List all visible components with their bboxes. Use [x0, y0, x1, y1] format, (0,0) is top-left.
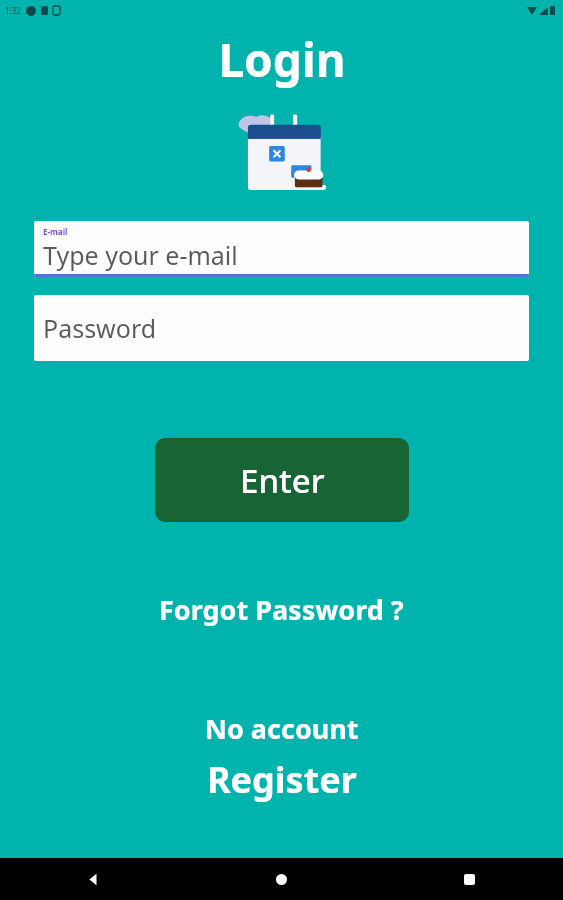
other: Calendar birthday: [236, 109, 328, 197]
staticText: E-mail: [43, 226, 68, 237]
staticText: Password: [43, 311, 157, 345]
staticText: Forgot Password ?: [159, 591, 404, 628]
staticText: Login: [218, 28, 346, 91]
staticText: 1:32: [5, 5, 21, 16]
button[interactable]: Home: [187, 858, 375, 900]
staticText: Enter: [240, 458, 325, 503]
button[interactable]: Password: [34, 295, 529, 361]
button[interactable]: Register: [199, 753, 365, 806]
staticText: Register: [207, 755, 357, 804]
button[interactable]: Recent apps: [375, 858, 563, 900]
button[interactable]: No account: [197, 708, 367, 749]
button[interactable]: Forgot Password ?: [151, 587, 412, 632]
button[interactable]: E-mail: [34, 221, 529, 277]
staticText: No account: [205, 710, 359, 747]
staticText: Type your e-mail: [43, 238, 238, 272]
button[interactable]: Enter: [155, 438, 409, 522]
button[interactable]: Back: [0, 858, 187, 900]
